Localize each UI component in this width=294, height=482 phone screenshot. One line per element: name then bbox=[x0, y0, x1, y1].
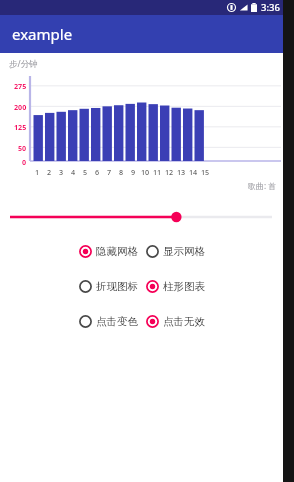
staticText: 10 bbox=[141, 167, 150, 177]
button[interactable]: 折现图标 bbox=[79, 278, 138, 295]
staticText: 点击无效 bbox=[163, 315, 205, 328]
other: Do not disturb bbox=[227, 3, 236, 12]
staticText: 9 bbox=[131, 167, 136, 177]
staticText: example bbox=[12, 24, 73, 44]
staticText: 13 bbox=[177, 167, 186, 177]
staticText: 11 bbox=[153, 167, 162, 177]
staticText: 15 bbox=[201, 167, 210, 177]
staticText: 6 bbox=[95, 167, 100, 177]
button[interactable]: 柱形图表 bbox=[146, 278, 205, 295]
staticText: 14 bbox=[189, 167, 198, 177]
staticText: 3 bbox=[59, 167, 64, 177]
staticText: 1 bbox=[35, 167, 40, 177]
staticText: 5 bbox=[83, 167, 88, 177]
other: Battery bbox=[251, 3, 257, 12]
button[interactable]: 隐藏网格 bbox=[79, 243, 138, 260]
staticText: 200 bbox=[14, 102, 27, 112]
button[interactable] bbox=[0, 207, 294, 227]
button[interactable]: 点击变色 bbox=[79, 313, 138, 330]
staticText: 3:36 bbox=[261, 1, 280, 14]
staticText: 2 bbox=[47, 167, 52, 177]
staticText: 12 bbox=[165, 167, 174, 177]
button[interactable]: 点击无效 bbox=[146, 313, 205, 330]
staticText: 0 bbox=[22, 157, 27, 167]
staticText: 步/分钟 bbox=[9, 58, 38, 70]
staticText: 125 bbox=[14, 122, 27, 132]
staticText: 8 bbox=[119, 167, 124, 177]
staticText: 显示网格 bbox=[163, 245, 205, 258]
staticText: 隐藏网格 bbox=[96, 245, 138, 258]
staticText: 275 bbox=[14, 81, 27, 91]
staticText: 点击变色 bbox=[96, 315, 138, 328]
staticText: 4 bbox=[71, 167, 76, 177]
staticText: 柱形图表 bbox=[163, 280, 205, 293]
button[interactable]: 显示网格 bbox=[146, 243, 205, 260]
staticText: 折现图标 bbox=[96, 280, 138, 293]
staticText: 7 bbox=[107, 167, 112, 177]
staticText: 歌曲: 首 bbox=[248, 180, 277, 191]
other: Signal bbox=[239, 3, 248, 12]
staticText: 50 bbox=[18, 143, 27, 153]
